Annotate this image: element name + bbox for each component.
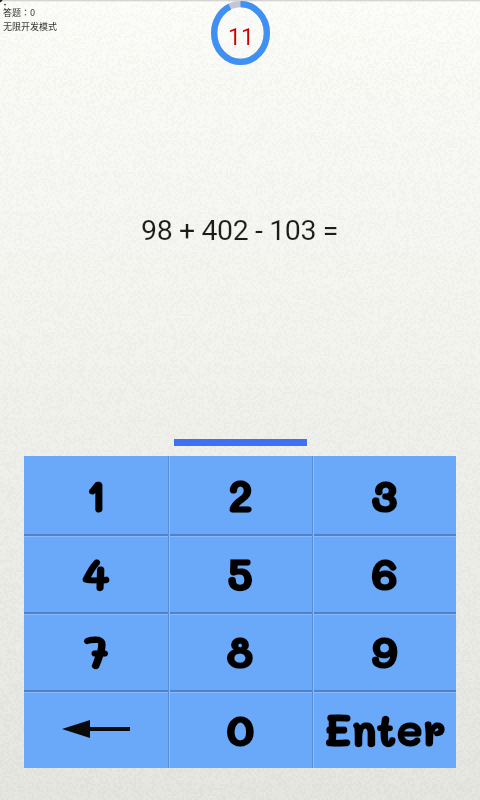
button[interactable]: 0 [168,690,312,768]
button[interactable]: Enter [312,690,456,768]
staticText: Enter [323,700,446,757]
staticText: 4 [82,544,110,601]
staticText: 无限开发模式 [3,20,58,33]
button[interactable]: 8 [168,612,312,690]
staticText: 2 [228,466,253,523]
button[interactable]: 9 [312,612,456,690]
button[interactable]: 2 [168,456,312,534]
staticText: 9 [371,622,398,679]
staticText: 5 [227,544,253,601]
staticText: 1 [86,466,106,523]
button[interactable]: 6 [312,534,456,612]
staticText: 8 [226,622,254,679]
button[interactable]: 7 [24,612,168,690]
button[interactable]: 3 [312,456,456,534]
button[interactable]: 1 [24,456,168,534]
staticText: 6 [371,544,398,601]
staticText: 98 + 402 - 103 = [141,214,339,247]
button[interactable]: 5 [168,534,312,612]
staticText: 答题：0 [3,6,36,19]
staticText: 11 [228,24,254,51]
button[interactable]: Backspace [24,690,168,768]
button[interactable]: 4 [24,534,168,612]
staticText: 0 [226,700,255,757]
staticText: 7 [84,622,109,679]
staticText: 3 [371,466,398,523]
